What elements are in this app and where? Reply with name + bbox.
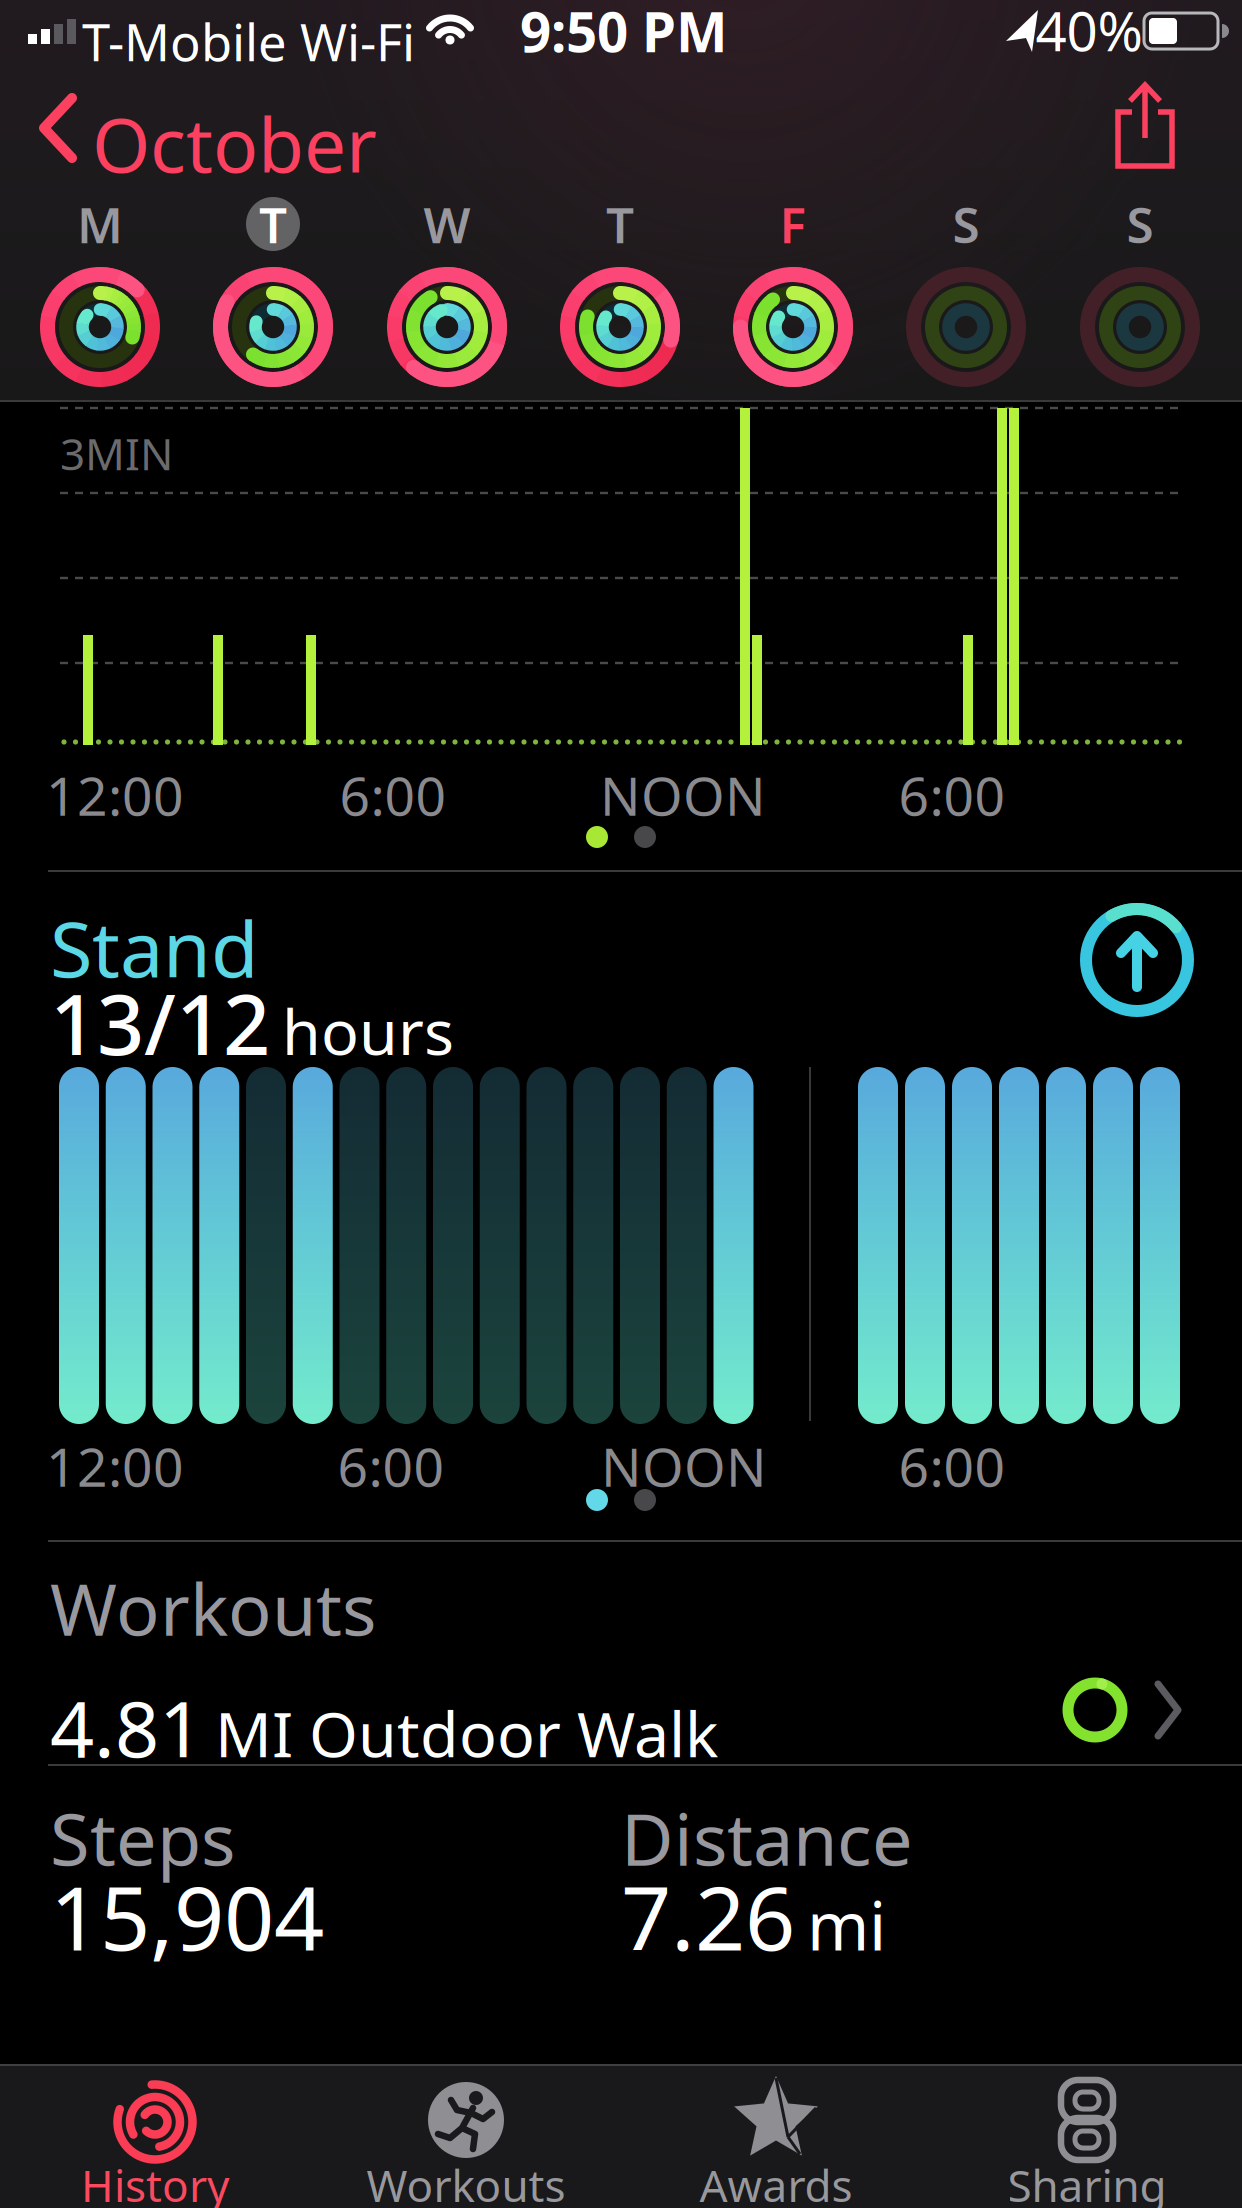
staticText: T [606, 191, 634, 257]
button[interactable]: October [0, 0, 320, 120]
staticText: History [81, 2156, 229, 2208]
staticText: Stand [50, 896, 259, 999]
staticText: Workouts [366, 2156, 565, 2208]
staticText: 6:00 [898, 760, 1005, 830]
staticText: 4.81 [50, 1676, 203, 1779]
staticText: 6:00 [898, 1431, 1005, 1501]
button[interactable]: S [906, 194, 1026, 254]
button[interactable]: Awards [650, 2070, 900, 2208]
button[interactable]: 4.81 [0, 0, 1242, 110]
button[interactable]: W [387, 194, 507, 254]
staticText: 12:00 [46, 760, 184, 830]
staticText: 40% [1035, 0, 1142, 66]
staticText: 7.26 [621, 1858, 795, 1975]
staticText: NOON [600, 760, 766, 830]
button[interactable]: History [30, 2070, 280, 2208]
button[interactable]: T [560, 194, 680, 254]
staticText: M [77, 191, 123, 257]
staticText: T [259, 191, 287, 257]
staticText: 3MIN [60, 424, 173, 482]
staticText: mi [807, 1880, 886, 1969]
staticText: S [952, 191, 979, 257]
button[interactable]: F [733, 194, 853, 254]
button[interactable]: M [40, 194, 160, 254]
staticText: 15,904 [50, 1858, 324, 1975]
staticText: Sharing [1007, 2156, 1166, 2208]
staticText: S [1126, 191, 1153, 257]
staticText: T-Mobile Wi-Fi [82, 8, 415, 75]
staticText: NOON [601, 1431, 767, 1501]
button[interactable]: S [1080, 194, 1200, 254]
button[interactable]: Sharing [960, 2070, 1210, 2208]
staticText: hours [282, 989, 454, 1072]
staticText: Steps [50, 1790, 235, 1886]
staticText: F [779, 191, 806, 257]
staticText: Awards [699, 2156, 852, 2208]
staticText: 9:50 PM [520, 0, 728, 67]
staticText: October [92, 94, 377, 193]
staticText: Workouts [50, 1560, 376, 1656]
staticText: 13/12 [50, 968, 270, 1078]
staticText: MI Outdoor Walk [215, 1691, 718, 1775]
staticText: W [423, 191, 470, 257]
staticText: 6:00 [339, 760, 446, 830]
button[interactable] [1110, 76, 1180, 171]
staticText: 12:00 [46, 1431, 184, 1501]
button[interactable]: T [213, 194, 333, 254]
staticText: 6:00 [337, 1431, 444, 1501]
button[interactable]: Workouts [340, 2070, 590, 2208]
staticText: Distance [621, 1790, 913, 1886]
